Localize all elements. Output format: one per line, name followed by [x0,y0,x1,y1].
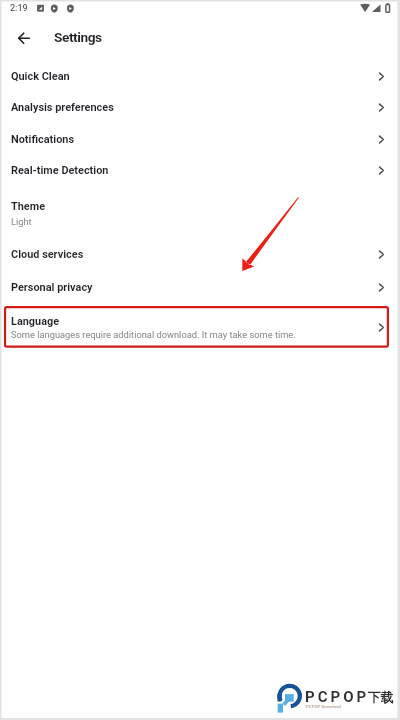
button[interactable]: Theme [0,190,400,237]
staticText: 2:19 [10,3,28,14]
staticText: PCPOP Download [306,704,342,709]
button[interactable]: Notifications [0,124,400,155]
staticText: Quick Clean [11,70,392,83]
staticText: PCPOP [305,688,370,706]
staticText: Some languages require additional downlo… [11,329,296,340]
button[interactable]: Analysis preferences [0,92,400,123]
staticText: Theme [11,200,46,213]
staticText: Language [11,315,60,328]
staticText: Real-time Detection [11,164,392,177]
staticText: Settings [54,29,102,45]
button[interactable]: Cloud services [0,239,400,270]
button[interactable]: Language [0,306,400,348]
staticText: 下载 [368,690,394,706]
staticText: Analysis preferences [11,101,392,114]
button[interactable]: Personal privacy [0,272,400,303]
staticText: Cloud services [11,248,392,261]
button[interactable]: Real-time Detection [0,155,400,186]
staticText: Light [11,216,32,227]
staticText: Personal privacy [11,281,392,294]
button[interactable]: Quick Clean [0,61,400,92]
button[interactable]: Back [10,25,38,53]
staticText: Notifications [11,133,392,146]
